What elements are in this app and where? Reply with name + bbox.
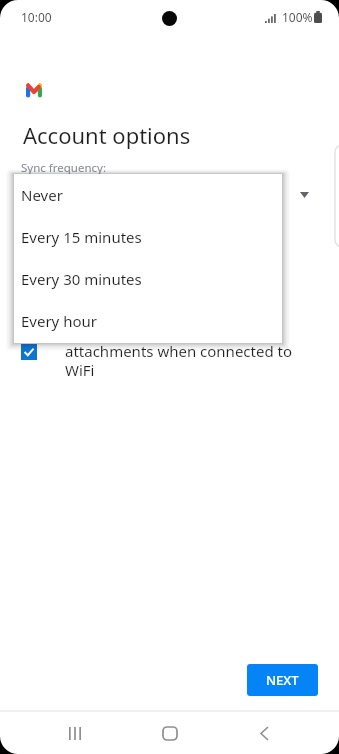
staticText: Sync frequency: <box>21 160 106 176</box>
button[interactable]: Home <box>122 710 217 754</box>
staticText: 100% <box>282 9 313 25</box>
button[interactable]: NEXT <box>247 664 318 696</box>
staticText: Never <box>21 185 63 205</box>
button[interactable]: Every hour <box>14 300 282 342</box>
staticText: 10:00 <box>21 9 52 25</box>
button[interactable]: Every 30 minutes <box>14 258 282 300</box>
staticText: Every 15 minutes <box>21 227 142 247</box>
staticText: Every 30 minutes <box>21 269 142 289</box>
button[interactable]: Never <box>14 174 282 216</box>
staticText: NEXT <box>266 671 299 689</box>
button[interactable]: Every 15 minutes <box>14 216 282 258</box>
staticText: Account options <box>23 120 191 150</box>
button[interactable]: attachments when connected to WiFi <box>21 341 303 380</box>
staticText: attachments when connected to WiFi <box>65 341 303 380</box>
staticText: Every hour <box>21 311 97 331</box>
button[interactable]: Recent apps <box>27 710 122 754</box>
button[interactable]: Back <box>217 710 312 754</box>
